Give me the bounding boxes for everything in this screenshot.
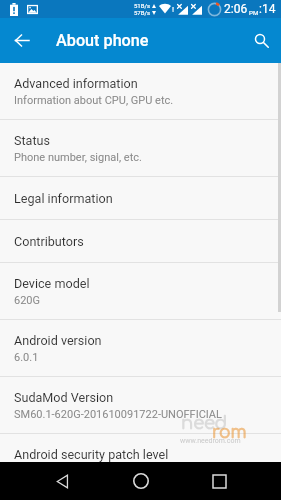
button[interactable]: Search — [246, 25, 277, 56]
button[interactable]: Device model — [0, 263, 281, 320]
staticText: Android version — [14, 333, 102, 348]
button[interactable]: Recent apps — [197, 462, 241, 500]
button[interactable]: Contributors — [0, 220, 281, 263]
button[interactable]: Navigate up — [6, 25, 37, 56]
staticText: Information about CPU, GPU etc. — [14, 94, 174, 107]
button[interactable]: Advanced information — [0, 63, 281, 120]
staticText: About phone — [56, 31, 149, 50]
staticText: 51B/s — [134, 2, 151, 9]
staticText: PM — [249, 9, 259, 16]
staticText: 620G — [14, 294, 41, 307]
staticText: :14 — [259, 2, 276, 16]
staticText: Android security patch level — [14, 447, 169, 462]
button[interactable]: Status — [0, 120, 281, 177]
staticText: 6.0.1 — [14, 351, 39, 364]
button[interactable]: Back — [40, 462, 84, 500]
staticText: Device model — [14, 276, 90, 291]
staticText: www.needrom.com — [180, 437, 241, 445]
button[interactable]: Legal information — [0, 177, 281, 220]
staticText: rom — [212, 423, 247, 442]
staticText: Advanced information — [14, 76, 138, 91]
button[interactable]: Android security patch level — [0, 434, 281, 462]
staticText: need — [181, 413, 228, 433]
staticText: 57B/s — [134, 9, 151, 16]
staticText: SM60.1-620G-201610091722-UNOFFICIAL — [14, 408, 222, 421]
staticText: ! — [172, 5, 175, 14]
staticText: Contributors — [14, 234, 84, 249]
staticText: SudaMod Version — [14, 390, 114, 405]
staticText: Legal information — [14, 191, 113, 206]
staticText: Phone number, signal, etc. — [14, 151, 142, 164]
staticText: Status — [14, 133, 51, 148]
button[interactable]: Home — [119, 462, 163, 500]
button[interactable]: SudaMod Version — [0, 377, 281, 434]
button[interactable]: Android version — [0, 320, 281, 377]
staticText: 2:06 — [224, 2, 248, 16]
